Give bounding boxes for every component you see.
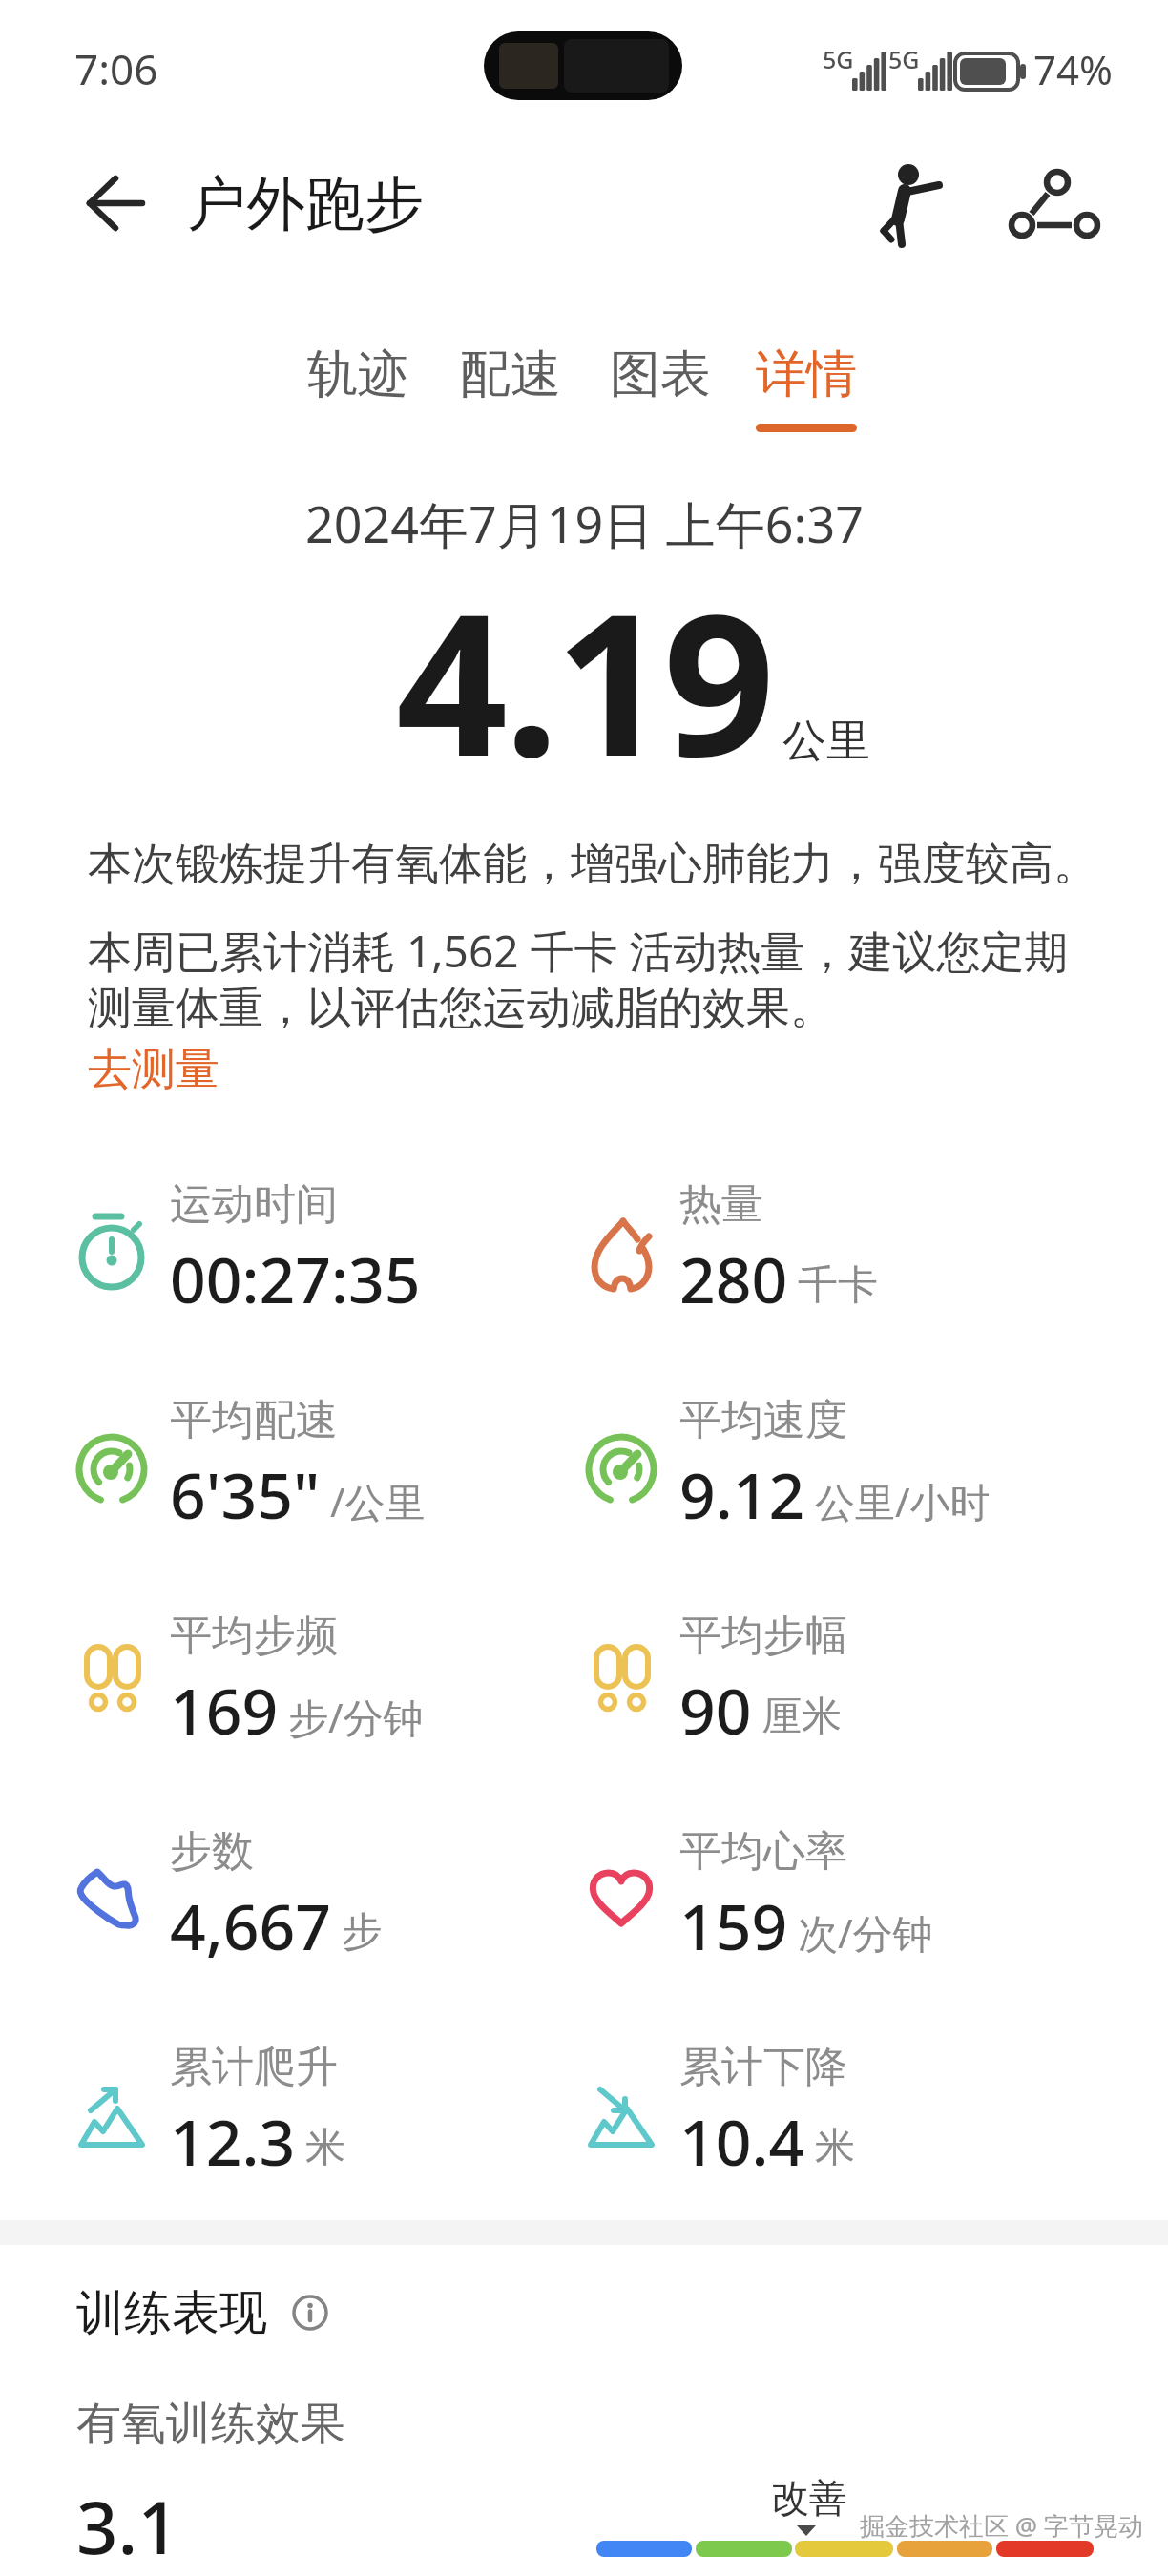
button[interactable] — [291, 2294, 329, 2332]
staticText: 00:27:35 — [170, 1236, 421, 1321]
staticText: 去测量 — [88, 1042, 219, 1097]
staticText: 运动时间 — [170, 1178, 338, 1231]
button[interactable] — [874, 160, 950, 248]
staticText: 3.1 — [76, 2477, 179, 2576]
staticText: 10.4 — [679, 2098, 805, 2184]
staticText: 步数 — [170, 1825, 254, 1878]
staticText: 步/分钟 — [288, 1690, 424, 1744]
staticText: 159 — [679, 1882, 788, 1968]
staticText: 280 — [679, 1236, 788, 1321]
staticText: 步 — [342, 1907, 382, 1958]
staticText: 详情 — [756, 343, 857, 406]
staticText: 公里/小时 — [815, 1474, 991, 1528]
button[interactable]: 配速 — [460, 323, 561, 425]
staticText: 千卡 — [798, 1260, 878, 1311]
staticText: 累计爬升 — [170, 2041, 338, 2093]
staticText: 轨迹 — [307, 343, 408, 406]
staticText: 5G — [888, 43, 920, 75]
staticText: /公里 — [330, 1474, 426, 1528]
button[interactable]: 去测量 — [88, 1026, 219, 1113]
staticText: 平均配速 — [170, 1394, 338, 1446]
staticText: 2024年7月19日 上午6:37 — [305, 489, 864, 557]
staticText: 测量体重，以评估您运动减脂的效果。 — [88, 981, 834, 1036]
staticText: 90 — [679, 1667, 752, 1753]
staticText: 掘金技术社区 @ 字节晃动 — [860, 2508, 1143, 2543]
staticText: 74% — [1033, 42, 1113, 96]
staticText: 热量 — [679, 1178, 763, 1231]
staticText: 有氧训练效果 — [76, 2396, 345, 2452]
staticText: 米 — [305, 2123, 345, 2173]
staticText: 累计下降 — [679, 2041, 847, 2093]
staticText: 平均心率 — [679, 1825, 847, 1878]
staticText: 次/分钟 — [798, 1905, 933, 1960]
staticText: 本次锻炼提升有氧体能，增强心肺能力，强度较高。 — [88, 837, 1097, 892]
staticText: 6'35" — [170, 1451, 321, 1537]
button[interactable]: 轨迹 — [307, 323, 408, 425]
staticText: 改善 — [771, 2474, 847, 2522]
staticText: 训练表现 — [76, 2283, 267, 2343]
staticText: 4,667 — [170, 1882, 332, 1968]
staticText: 厘米 — [761, 1692, 842, 1742]
button[interactable] — [67, 168, 158, 240]
staticText: 公里 — [782, 714, 870, 769]
button[interactable]: 图表 — [610, 323, 711, 425]
staticText: 平均速度 — [679, 1394, 847, 1446]
button[interactable] — [1008, 162, 1099, 246]
staticText: 本周已累计消耗 1,562 千卡 活动热量，建议您定期 — [88, 921, 1069, 981]
staticText: 12.3 — [170, 2098, 296, 2184]
staticText: 平均步频 — [170, 1610, 338, 1662]
staticText: 9.12 — [679, 1451, 805, 1537]
staticText: 169 — [170, 1667, 279, 1753]
staticText: 户外跑步 — [187, 167, 424, 241]
staticText: 图表 — [610, 343, 711, 406]
staticText: 4.19 — [396, 547, 772, 813]
staticText: 7:06 — [74, 40, 158, 97]
button[interactable]: 详情 — [756, 323, 857, 425]
staticText: 米 — [815, 2123, 855, 2173]
staticText: 配速 — [460, 343, 561, 406]
staticText: 平均步幅 — [679, 1610, 847, 1662]
staticText: 5G — [823, 43, 854, 75]
